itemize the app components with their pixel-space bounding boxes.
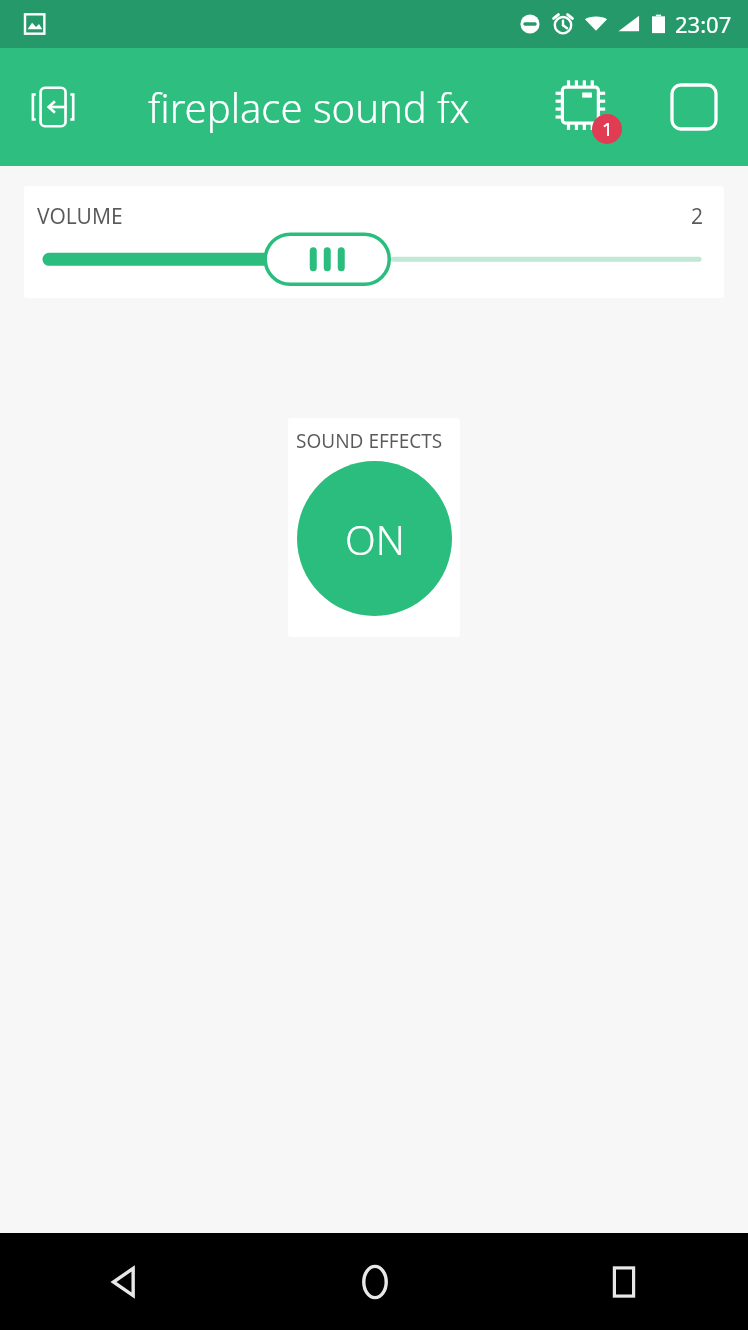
staticText: SOUND EFFECTS xyxy=(296,428,443,454)
button[interactable]: Stop xyxy=(662,75,726,139)
button[interactable]: Device xyxy=(542,68,620,146)
button[interactable]: ON xyxy=(297,461,452,616)
staticText: 1 xyxy=(602,117,613,142)
button[interactable]: Back xyxy=(22,75,86,139)
staticText: 2 xyxy=(691,202,704,231)
button[interactable]: SOUND EFFECTS xyxy=(288,418,460,637)
button[interactable]: Back xyxy=(0,1233,250,1330)
staticText: 23:07 xyxy=(675,9,732,39)
button[interactable]: VOLUME xyxy=(24,186,724,298)
staticText: VOLUME xyxy=(37,202,123,231)
button[interactable]: Home xyxy=(250,1233,499,1330)
staticText: fireplace sound fx xyxy=(148,80,470,134)
button[interactable]: Recent apps xyxy=(499,1233,748,1330)
staticText: ON xyxy=(345,512,405,566)
